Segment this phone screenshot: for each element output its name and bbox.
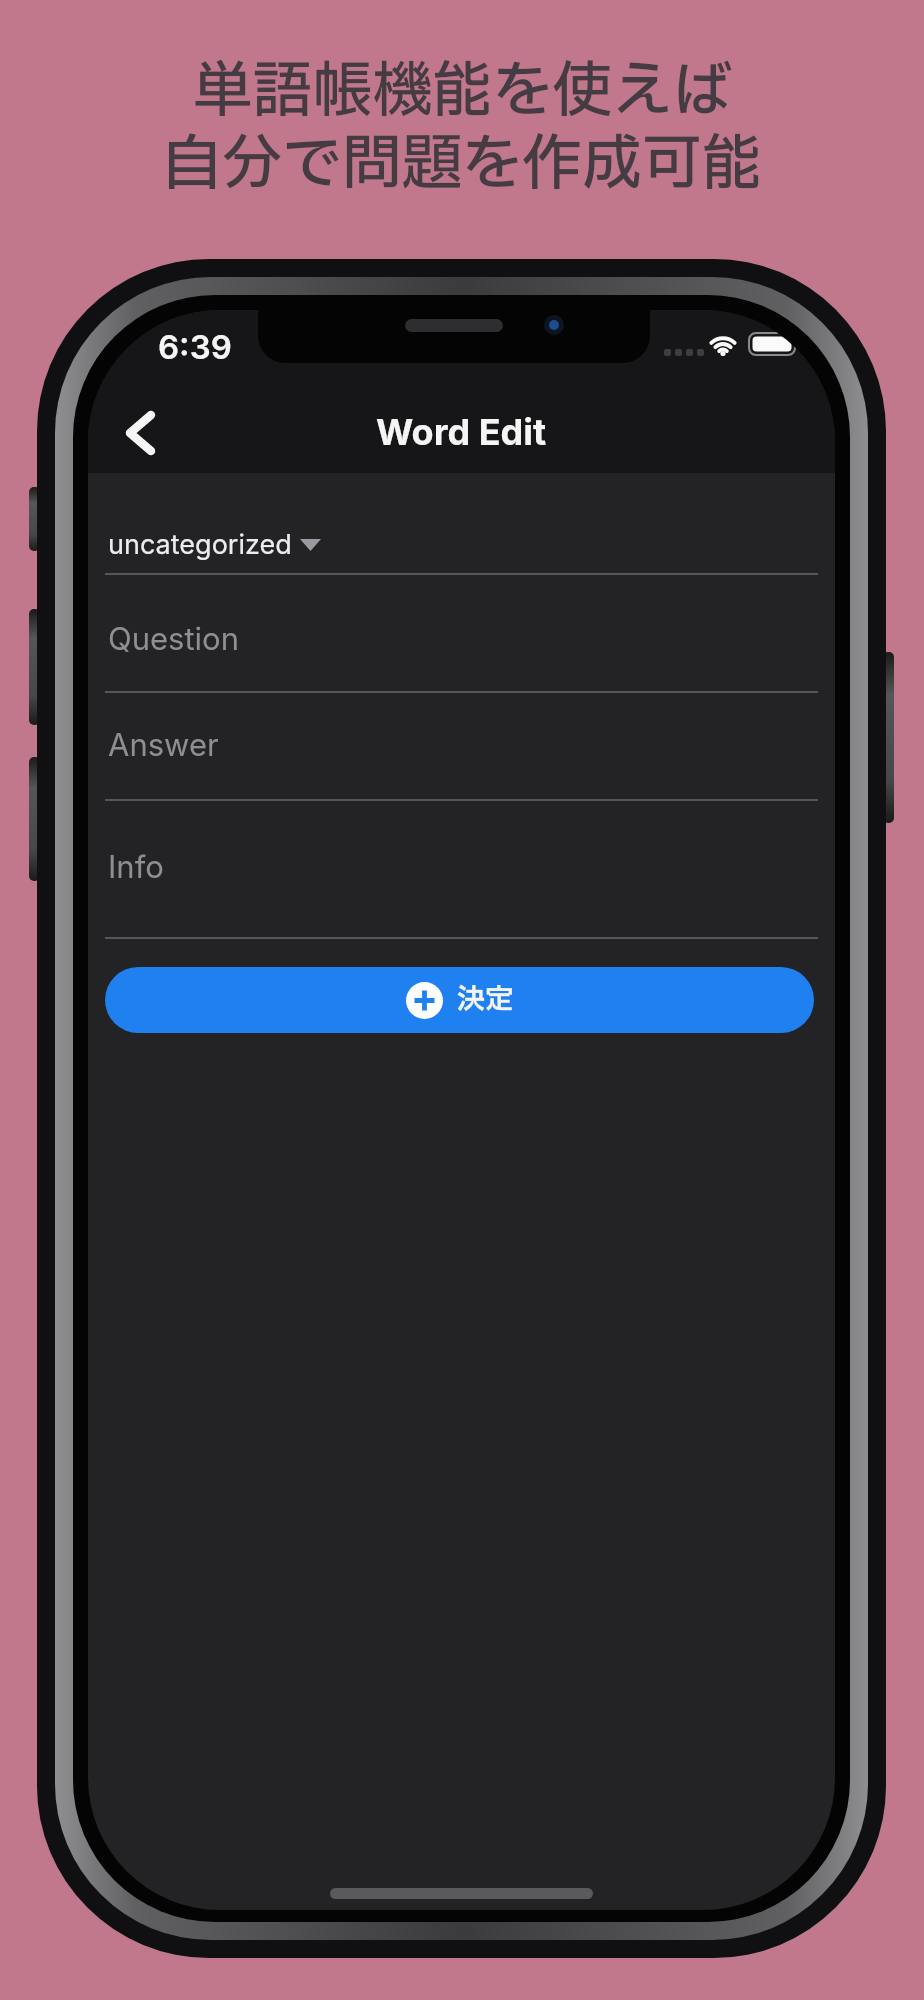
button[interactable]: Question [105,582,818,693]
button[interactable]: uncategorized [108,528,321,561]
staticText: Info [108,848,164,886]
button[interactable]: Answer [105,700,818,801]
staticText: 決定 [457,979,514,1021]
staticText: 単語帳機能を使えば 自分で問題を作成可能 [162,47,762,210]
staticText: Word Edit [376,410,547,454]
staticText: 6:39 [158,327,232,367]
button[interactable]: 決定 [105,967,814,1033]
staticText: Question [108,620,240,658]
staticText: Answer [108,726,219,764]
button[interactable] [113,405,168,461]
staticText: uncategorized [108,528,292,561]
button[interactable]: Info [105,808,818,939]
